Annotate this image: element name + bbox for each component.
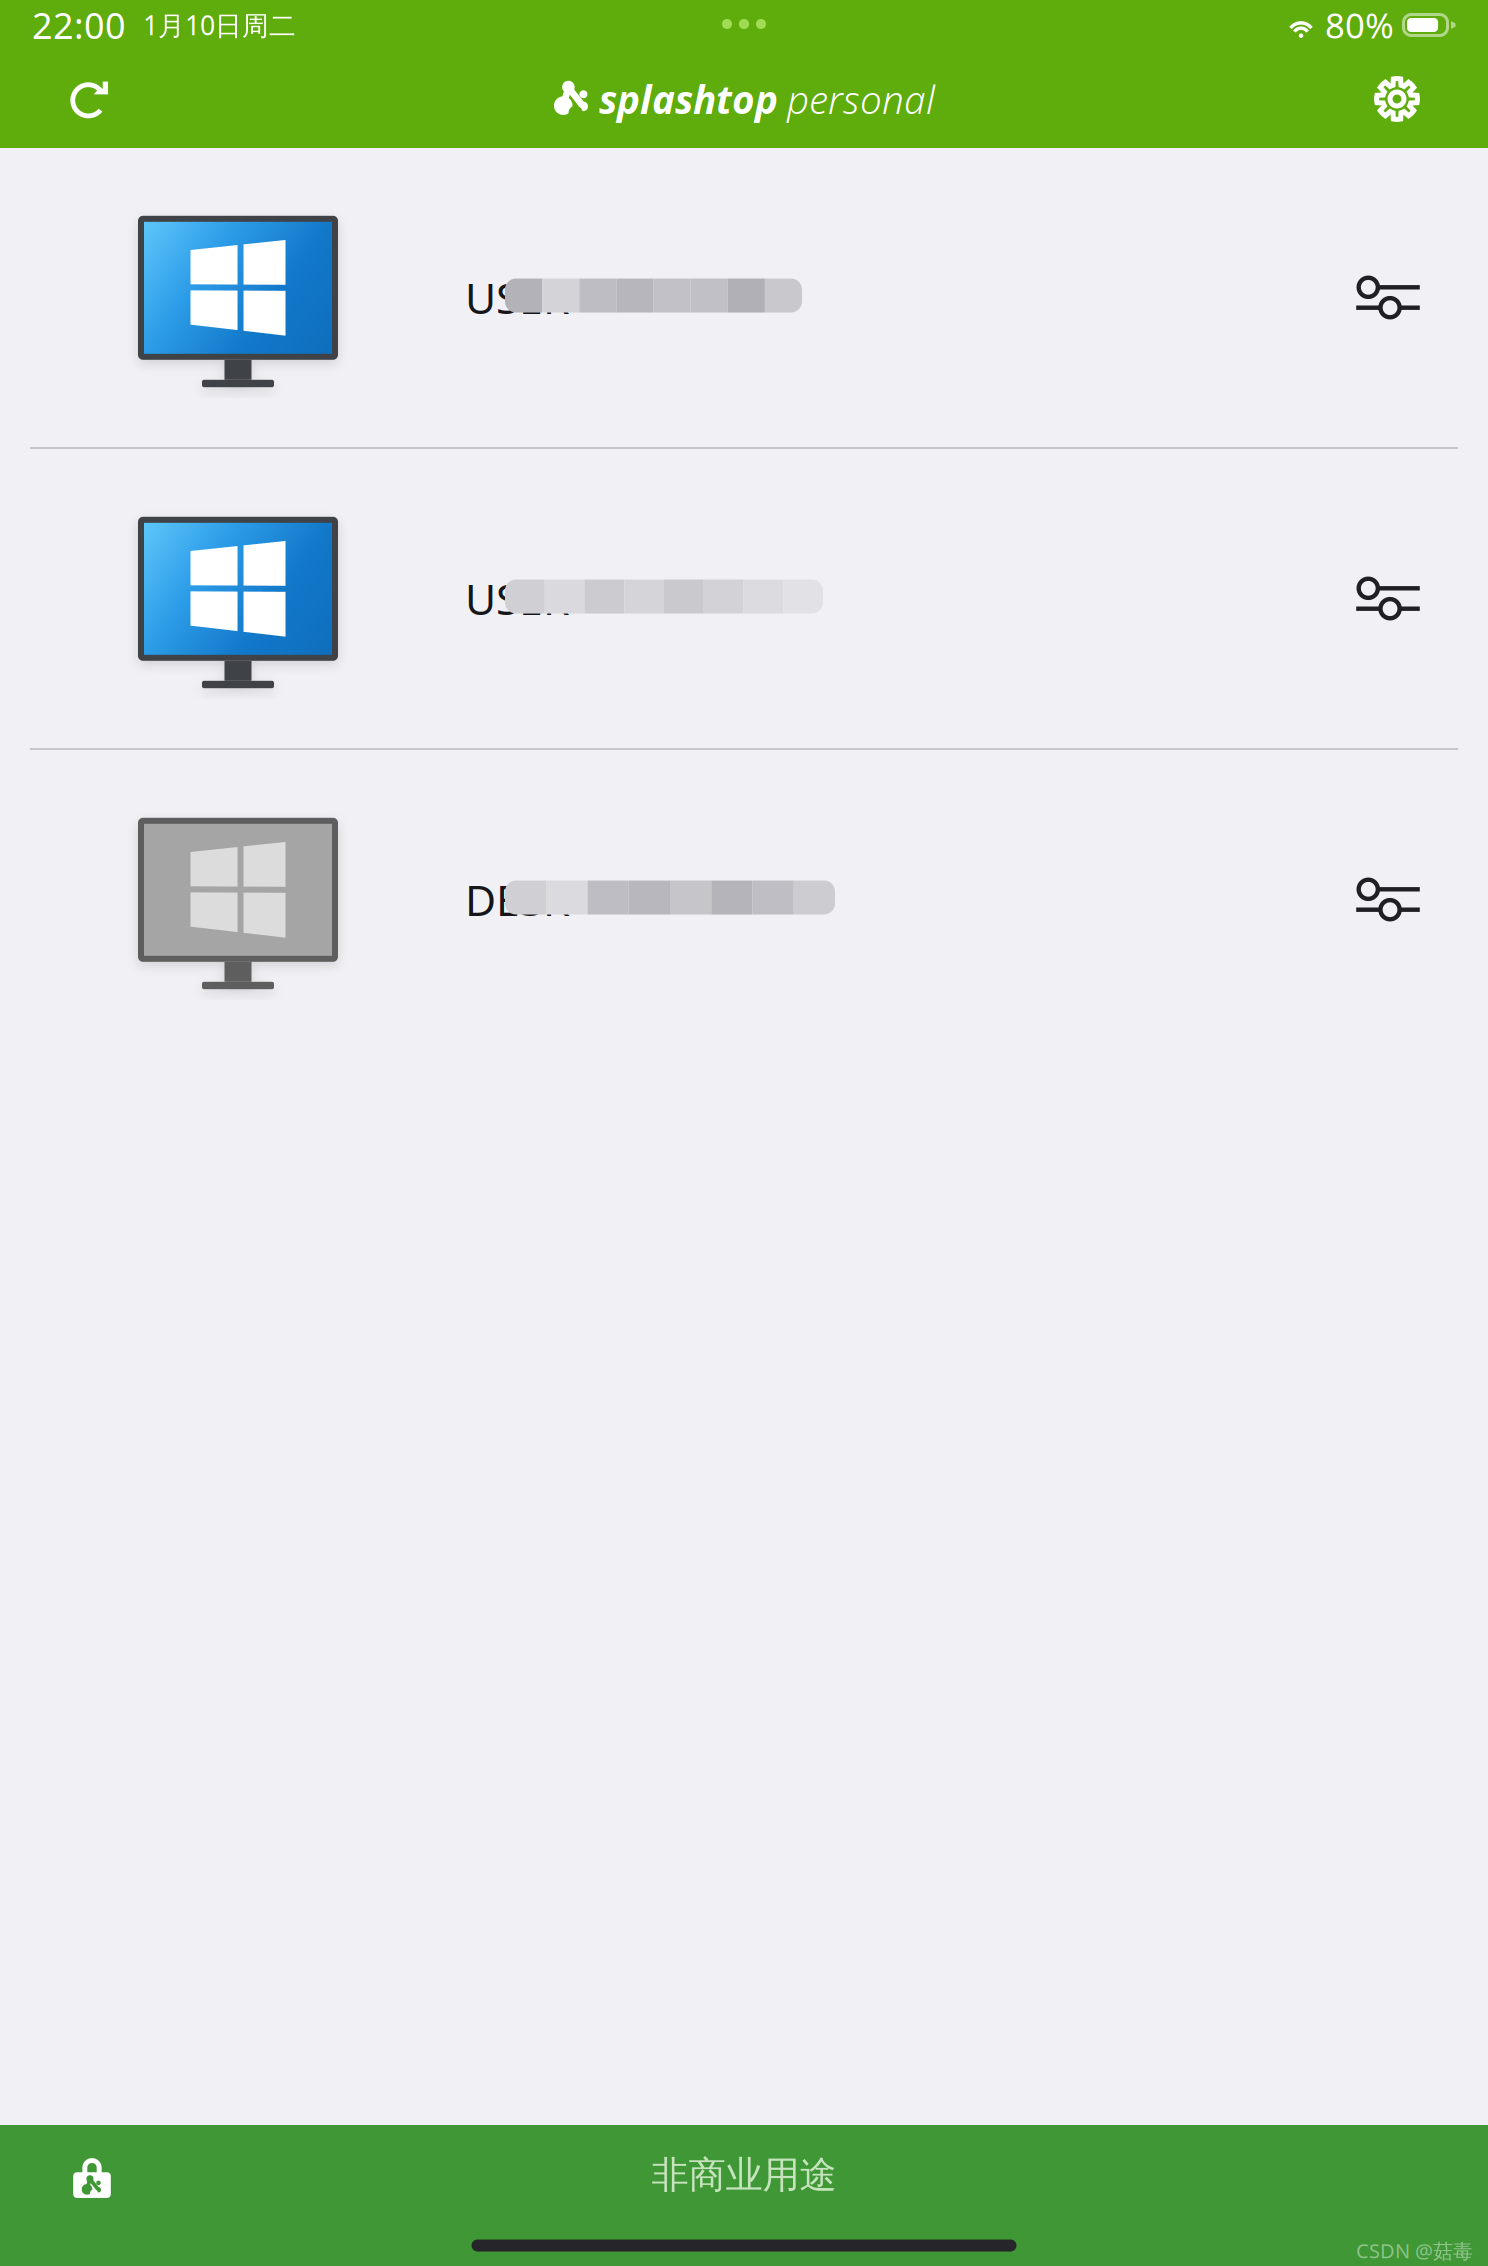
button[interactable]: Refresh	[42, 50, 140, 148]
staticText: 22:00	[32, 1, 126, 49]
staticText: DESK	[465, 871, 569, 928]
staticText: USER	[465, 269, 570, 326]
button[interactable]: DESK	[0, 750, 1488, 1049]
staticText: 80%	[1325, 2, 1394, 48]
button[interactable]: Upgrade	[54, 2137, 130, 2213]
staticText: USER	[465, 570, 570, 627]
button[interactable]: USER	[0, 148, 1488, 447]
button[interactable]: USER	[0, 449, 1488, 748]
staticText: 非商业用途	[651, 2152, 836, 2198]
staticText: CSDN @菇毒	[1356, 2237, 1473, 2264]
staticText: 1月10日周二	[143, 7, 296, 43]
button[interactable]: Settings	[1348, 50, 1446, 148]
staticText: splashtop	[599, 73, 778, 125]
staticText: personal	[787, 73, 935, 125]
